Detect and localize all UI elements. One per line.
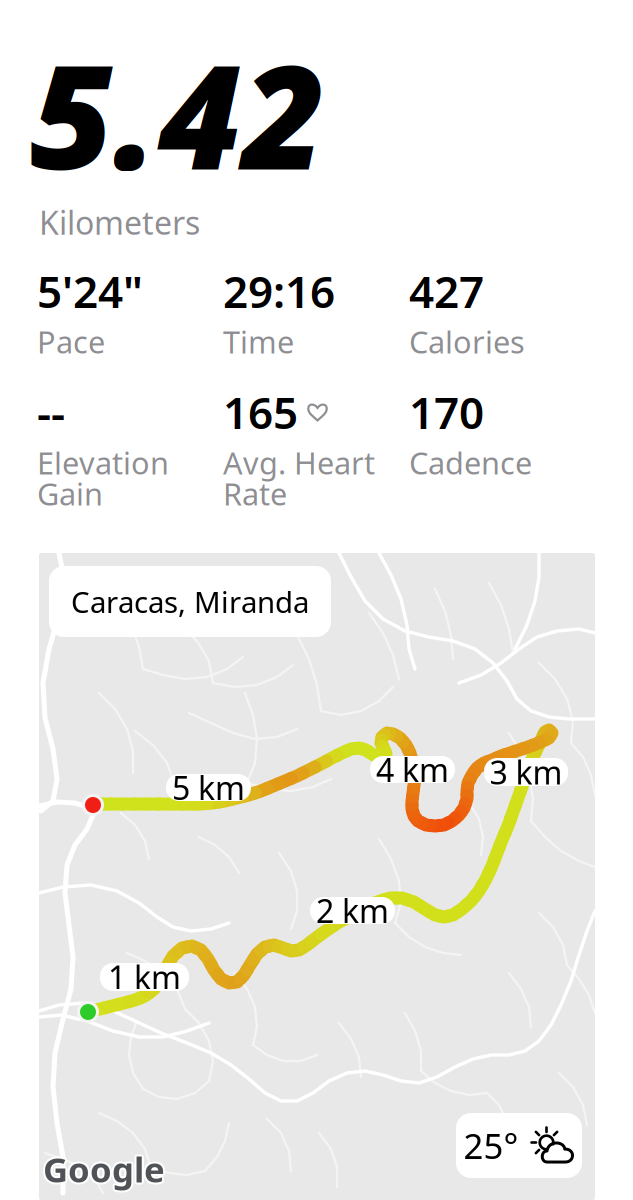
- staticText: 5'24": [37, 262, 143, 320]
- staticText: Calories: [409, 321, 525, 362]
- staticText: 170: [409, 383, 484, 441]
- staticText: Google: [43, 1144, 165, 1190]
- staticText: 3 km: [489, 751, 562, 793]
- staticText: 1 km: [108, 956, 181, 998]
- staticText: 25°: [463, 1122, 518, 1168]
- staticText: Gain: [37, 473, 103, 514]
- staticText: Google: [42, 1145, 164, 1191]
- staticText: Cadence: [409, 442, 532, 483]
- staticText: 4 km: [376, 748, 449, 791]
- staticText: Google: [41, 1146, 163, 1192]
- staticText: Elevation: [37, 442, 169, 483]
- staticText: Google: [44, 1147, 166, 1193]
- staticText: 2 km: [316, 889, 389, 932]
- staticText: Caracas, Miranda: [71, 582, 309, 621]
- staticText: --: [37, 383, 65, 441]
- staticText: 165: [223, 383, 298, 441]
- staticText: Google: [44, 1145, 166, 1191]
- staticText: 5.42: [30, 18, 326, 209]
- staticText: 427: [409, 262, 484, 320]
- staticText: Google: [42, 1147, 164, 1193]
- staticText: 29:16: [223, 262, 335, 320]
- staticText: Kilometers: [39, 201, 200, 243]
- staticText: Pace: [37, 321, 105, 362]
- staticText: 5 km: [172, 766, 245, 809]
- staticText: Google: [43, 1146, 165, 1192]
- staticText: Google: [43, 1148, 165, 1194]
- staticText: Rate: [223, 473, 287, 514]
- staticText: Time: [223, 321, 294, 362]
- staticText: Google: [45, 1146, 167, 1192]
- staticText: Avg. Heart: [223, 442, 375, 483]
